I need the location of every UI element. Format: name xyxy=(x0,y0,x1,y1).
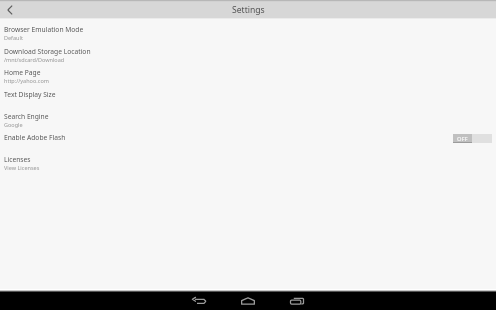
button[interactable]: Text Display Size xyxy=(0,90,496,112)
staticText: /mnt/sdcard/Download xyxy=(4,56,65,63)
staticText: http://yahoo.com xyxy=(4,77,49,84)
staticText: View Licenses xyxy=(4,164,40,171)
staticText: Browser Emulation Mode xyxy=(4,25,84,34)
staticText: Licenses xyxy=(4,155,31,164)
button[interactable]: Enable Adobe Flash xyxy=(0,133,496,155)
staticText: Google xyxy=(4,121,23,128)
staticText: Download Storage Location xyxy=(4,47,91,56)
button[interactable]: Download Storage Location xyxy=(0,47,496,69)
button[interactable]: Browser Emulation Mode xyxy=(0,25,496,47)
button[interactable]: Recent apps xyxy=(285,291,309,310)
button[interactable]: Navigate up xyxy=(0,0,19,19)
staticText: Home Page xyxy=(4,68,41,77)
button[interactable]: Home Page xyxy=(0,68,496,90)
staticText: Default xyxy=(4,34,23,41)
staticText: OFF xyxy=(457,135,468,143)
button[interactable]: Enable Adobe Flash xyxy=(453,134,492,143)
staticText: Search Engine xyxy=(4,112,49,121)
staticText: Settings xyxy=(232,4,265,16)
staticText: Text Display Size xyxy=(4,90,56,99)
button[interactable]: Licenses xyxy=(0,155,496,177)
button[interactable]: Search Engine xyxy=(0,112,496,134)
staticText: Enable Adobe Flash xyxy=(4,133,66,142)
button[interactable]: Home xyxy=(236,291,260,310)
button[interactable]: Back xyxy=(187,291,211,310)
